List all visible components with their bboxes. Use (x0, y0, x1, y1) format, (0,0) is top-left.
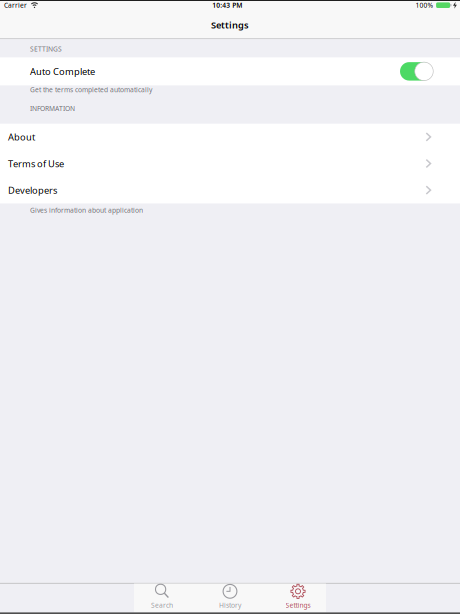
staticText: Settings (285, 601, 310, 610)
staticText: 100% (416, 1, 434, 10)
staticText: Developers (8, 184, 57, 196)
staticText: Terms of Use (8, 157, 64, 170)
staticText: Auto Complete (30, 65, 95, 78)
button[interactable]: Settings (270, 578, 326, 614)
button[interactable]: History (202, 578, 258, 614)
staticText: Carrier (4, 1, 27, 10)
staticText: Search (151, 601, 173, 610)
staticText: Settings (211, 19, 249, 31)
button[interactable]: About (0, 124, 460, 150)
staticText: Get the terms completed automatically (30, 85, 152, 94)
button[interactable]: Developers (0, 177, 460, 203)
button[interactable]: Auto Complete (400, 62, 432, 81)
staticText: 10:43 PM (212, 1, 242, 10)
button[interactable]: Terms of Use (0, 150, 460, 177)
staticText: History (219, 601, 241, 610)
staticText: SETTINGS (30, 44, 62, 53)
staticText: Gives information about application (30, 206, 143, 215)
staticText: About (8, 131, 35, 143)
button[interactable]: Search (134, 578, 190, 614)
staticText: INFORMATION (30, 104, 75, 113)
